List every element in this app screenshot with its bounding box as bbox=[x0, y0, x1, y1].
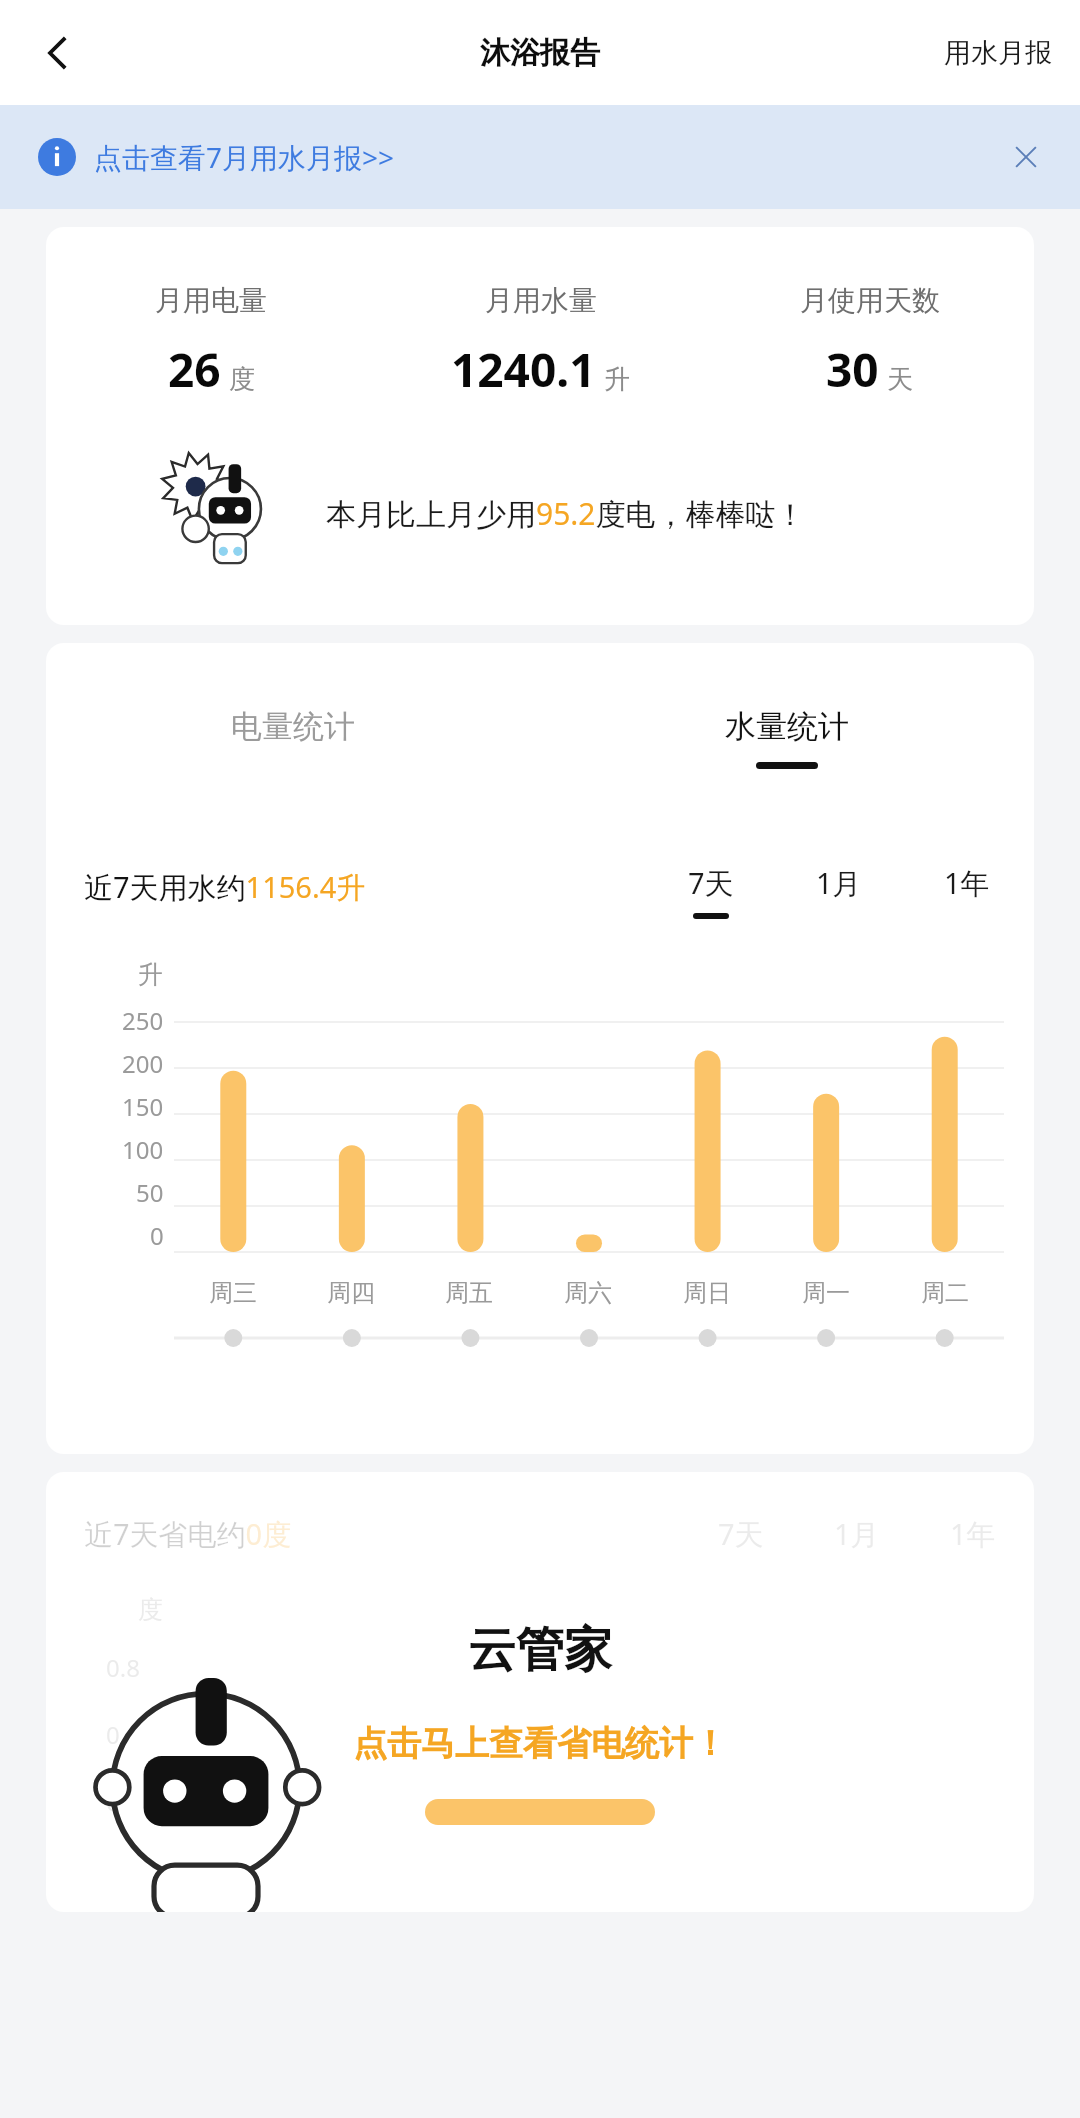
button[interactable]: 水量统计 bbox=[540, 697, 1034, 779]
button[interactable]: Close bbox=[1000, 131, 1052, 183]
staticText: 0.4 bbox=[106, 1785, 140, 1818]
button[interactable]: 1年 bbox=[938, 863, 996, 919]
staticText: 周六 bbox=[564, 1278, 612, 1308]
staticText: 度 bbox=[138, 1594, 163, 1625]
staticText: 用水月报 bbox=[944, 36, 1052, 70]
staticText: 1月 bbox=[816, 863, 862, 903]
button[interactable]: Back bbox=[22, 17, 94, 89]
staticText: 30 bbox=[826, 338, 879, 401]
staticText: 200 bbox=[122, 1047, 164, 1080]
staticText: 水量统计 bbox=[725, 707, 849, 746]
staticText: 1年 bbox=[950, 1514, 996, 1554]
button[interactable]: 1月 bbox=[810, 863, 868, 919]
button[interactable]: 云管家 bbox=[46, 1472, 1034, 1912]
staticText: 升 bbox=[604, 363, 630, 396]
button[interactable]: 用水月报 bbox=[934, 24, 1062, 82]
staticText: 0 bbox=[150, 1219, 164, 1252]
button[interactable]: 点击查看7月用水月报>> bbox=[0, 105, 1080, 209]
staticText: 月使用天数 bbox=[800, 283, 940, 318]
button[interactable]: 电量统计 bbox=[46, 697, 540, 779]
staticText: 天 bbox=[887, 363, 913, 396]
staticText: 周日 bbox=[683, 1278, 731, 1308]
staticText: 250 bbox=[122, 1004, 164, 1037]
staticText: 周一 bbox=[802, 1278, 850, 1308]
staticText: 电量统计 bbox=[231, 707, 355, 746]
staticText: 云管家 bbox=[468, 1620, 612, 1680]
staticText: 50 bbox=[136, 1176, 164, 1209]
staticText: 月用电量 bbox=[155, 283, 267, 318]
staticText: 0.8 bbox=[106, 1651, 140, 1684]
staticText: 升 bbox=[138, 959, 163, 990]
staticText: 点击马上查看省电统计！ bbox=[353, 1722, 727, 1765]
staticText: 周五 bbox=[445, 1278, 493, 1308]
staticText: 沐浴报告 bbox=[480, 34, 600, 72]
staticText: 100 bbox=[122, 1133, 164, 1166]
staticText: 近7天省电约0度 bbox=[84, 1514, 292, 1554]
button[interactable]: 7天 bbox=[682, 863, 740, 919]
staticText: 150 bbox=[122, 1090, 164, 1123]
staticText: 周四 bbox=[327, 1278, 375, 1308]
staticText: 近7天用水约1156.4升 bbox=[84, 867, 366, 907]
staticText: 度 bbox=[229, 363, 255, 396]
staticText: 7天 bbox=[688, 863, 734, 903]
staticText: 26 bbox=[168, 338, 221, 401]
staticText: 0.6 bbox=[106, 1718, 140, 1751]
staticText: 1月 bbox=[834, 1514, 880, 1554]
staticText: 1年 bbox=[944, 863, 990, 903]
staticText: 点击查看7月用水月报>> bbox=[94, 138, 395, 176]
staticText: 周三 bbox=[209, 1278, 257, 1308]
staticText: 月用水量 bbox=[485, 283, 597, 318]
staticText: 7天 bbox=[718, 1514, 764, 1554]
staticText: 本月比上月少用95.2度电，棒棒哒！ bbox=[326, 493, 806, 534]
staticText: 1240.1 bbox=[451, 338, 596, 401]
staticText: 周二 bbox=[921, 1278, 969, 1308]
